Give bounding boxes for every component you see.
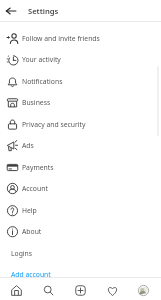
button[interactable]: Profile bbox=[133, 280, 153, 300]
button[interactable]: Your activity bbox=[0, 48, 161, 70]
staticText: Add account bbox=[11, 270, 51, 279]
button[interactable]: Follow and invite friends bbox=[0, 27, 161, 49]
button[interactable]: Create bbox=[70, 280, 90, 300]
button[interactable]: Business bbox=[0, 91, 161, 113]
button[interactable]: Payments bbox=[0, 156, 161, 178]
button[interactable]: Notifications bbox=[0, 70, 161, 92]
button[interactable]: Back bbox=[2, 2, 19, 19]
staticText: Settings bbox=[28, 6, 59, 16]
button[interactable]: Activity bbox=[102, 280, 122, 300]
button[interactable]: Home bbox=[6, 280, 26, 300]
button[interactable]: Privacy and security bbox=[0, 113, 161, 135]
button[interactable]: Add account bbox=[0, 263, 161, 285]
staticText: Privacy and security bbox=[22, 120, 86, 129]
button[interactable]: Search bbox=[38, 280, 58, 300]
staticText: Notifications bbox=[22, 77, 63, 86]
staticText: Payments bbox=[22, 163, 54, 172]
staticText: Business bbox=[22, 98, 51, 107]
button[interactable]: Help bbox=[0, 199, 161, 221]
button[interactable]: Account bbox=[0, 177, 161, 199]
button[interactable]: About bbox=[0, 220, 161, 242]
staticText: Help bbox=[22, 206, 37, 215]
staticText: Your activity bbox=[22, 55, 61, 64]
staticText: Account bbox=[22, 184, 48, 193]
staticText: Ads bbox=[22, 141, 34, 150]
staticText: Logins bbox=[11, 249, 33, 258]
staticText: About bbox=[22, 227, 42, 236]
button[interactable]: Ads bbox=[0, 134, 161, 156]
staticText: Follow and invite friends bbox=[22, 34, 100, 43]
